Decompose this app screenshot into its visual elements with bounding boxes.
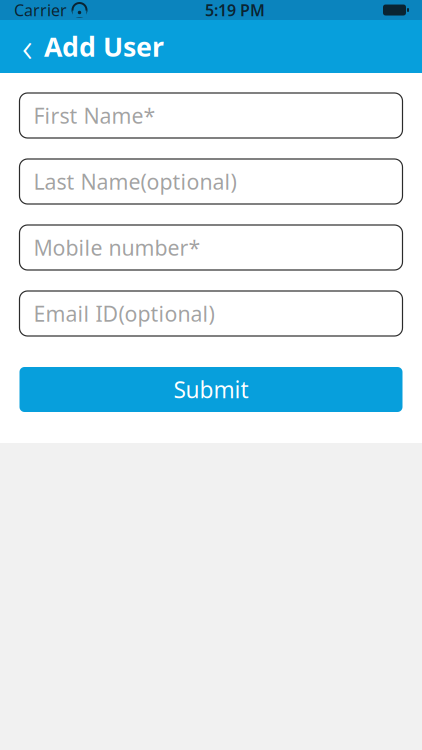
button[interactable]: Submit — [19, 367, 402, 412]
button[interactable]: First Name* — [19, 93, 402, 138]
button[interactable]: Email ID(optional) — [19, 291, 402, 336]
staticText: Last Name(optional) — [33, 167, 236, 196]
button[interactable]: ‹ — [0, 20, 170, 73]
button[interactable]: Mobile number* — [19, 225, 402, 270]
staticText: Email ID(optional) — [33, 299, 214, 328]
staticText: First Name* — [33, 101, 155, 130]
staticText: Mobile number* — [33, 233, 200, 262]
staticText: 5:19 PM — [205, 0, 265, 21]
staticText: Carrier — [14, 0, 67, 21]
staticText: Submit — [173, 374, 248, 404]
staticText: Add User — [44, 29, 164, 64]
button[interactable]: Last Name(optional) — [19, 159, 402, 204]
staticText: ‹ — [22, 20, 33, 73]
